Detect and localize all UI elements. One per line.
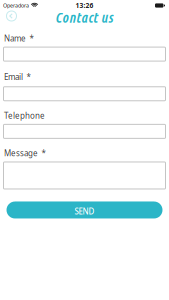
button[interactable]: Back <box>5 9 18 22</box>
staticText: Telephone <box>4 110 45 121</box>
staticText: * <box>29 33 33 44</box>
staticText: Operadora <box>3 2 29 9</box>
staticText: * <box>26 72 30 82</box>
staticText: SEND <box>74 206 94 217</box>
staticText: * <box>41 148 45 158</box>
staticText: Message <box>4 148 38 158</box>
staticText: Email <box>4 72 23 82</box>
staticText: Contact us <box>55 10 113 26</box>
staticText: 13:26 <box>75 1 93 10</box>
staticText: Name <box>4 33 26 44</box>
button[interactable]: SEND <box>6 201 162 218</box>
